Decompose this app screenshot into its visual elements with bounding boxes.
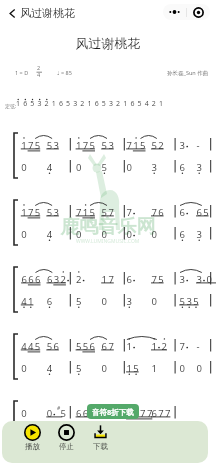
button[interactable]: 停止 — [51, 421, 82, 463]
button[interactable]: Back — [0, 1, 24, 25]
staticText: 音符8折下载 — [92, 407, 134, 417]
staticText: 停止 — [59, 442, 74, 451]
button[interactable]: 播放 — [17, 421, 48, 463]
button[interactable]: 音符8折下载 — [87, 404, 139, 419]
button[interactable]: More — [163, 4, 186, 20]
staticText: 下载 — [93, 442, 108, 451]
button[interactable]: 下载 — [85, 421, 116, 463]
staticText: 播放 — [25, 442, 40, 451]
staticText: 风过谢桃花 — [20, 6, 75, 20]
button[interactable]: Close — [187, 4, 210, 20]
